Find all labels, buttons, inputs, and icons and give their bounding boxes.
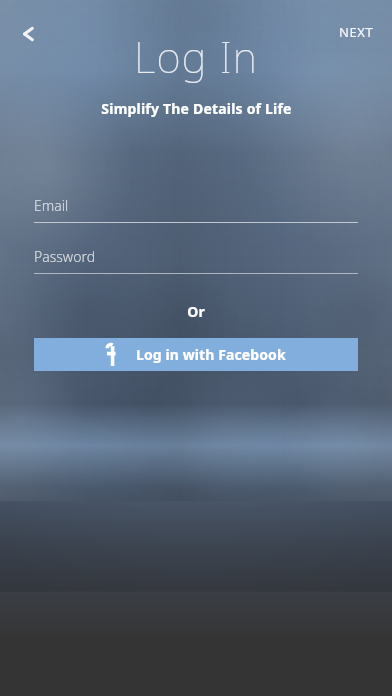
staticText: Log In: [134, 28, 258, 85]
staticText: Simplify The Details of Life: [101, 99, 292, 118]
button[interactable]: NEXT: [331, 18, 382, 46]
staticText: Email: [34, 196, 69, 215]
staticText: Log in with Facebook: [136, 345, 286, 364]
button[interactable]: Log in with Facebook: [34, 338, 358, 371]
button[interactable]: Email: [34, 196, 358, 223]
button[interactable]: Password: [34, 247, 358, 274]
staticText: Or: [34, 302, 358, 321]
staticText: NEXT: [339, 23, 374, 41]
button[interactable]: Back: [8, 14, 48, 54]
staticText: Password: [34, 247, 96, 266]
